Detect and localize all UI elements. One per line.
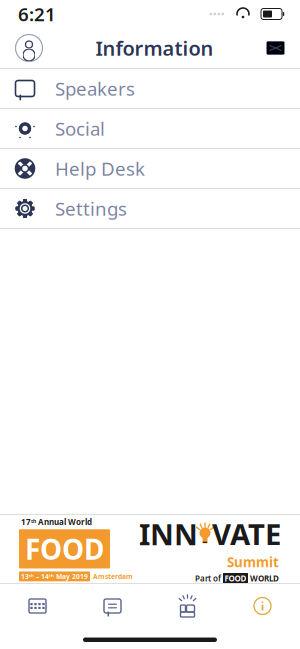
button[interactable]: Messages [75, 588, 150, 624]
staticText: 6:21 [18, 2, 56, 26]
button[interactable]: Profile [0, 29, 44, 67]
button[interactable]: Help Desk [0, 149, 300, 189]
button[interactable]: Speakers [0, 69, 300, 109]
staticText: Summit [227, 553, 279, 571]
button[interactable]: Agenda [0, 588, 75, 624]
button[interactable]: Settings [0, 189, 300, 229]
staticText: Speakers [55, 76, 135, 101]
button[interactable]: Food Innovate Summit advertisement [0, 515, 300, 583]
staticText: 13ᵗʰ – 14ᵗʰ May 2019 [21, 572, 88, 581]
button[interactable]: Information [225, 588, 300, 624]
staticText: WORLD [250, 573, 279, 584]
button[interactable]: Mail [265, 33, 300, 62]
staticText: Social [55, 116, 105, 141]
staticText: Help Desk [55, 156, 145, 181]
staticText: Settings [55, 196, 127, 221]
staticText: Information [95, 35, 213, 61]
button[interactable]: Social [0, 109, 300, 149]
staticText: INN [139, 514, 198, 553]
staticText: VATE [212, 514, 281, 553]
staticText: Part of [195, 573, 221, 584]
button[interactable]: Engage [150, 588, 225, 624]
staticText: FOOD [224, 573, 246, 584]
staticText: FOOD [25, 530, 104, 567]
staticText: 17ᵗʰ Annual World [21, 517, 92, 527]
staticText: Amsterdam [93, 572, 133, 581]
